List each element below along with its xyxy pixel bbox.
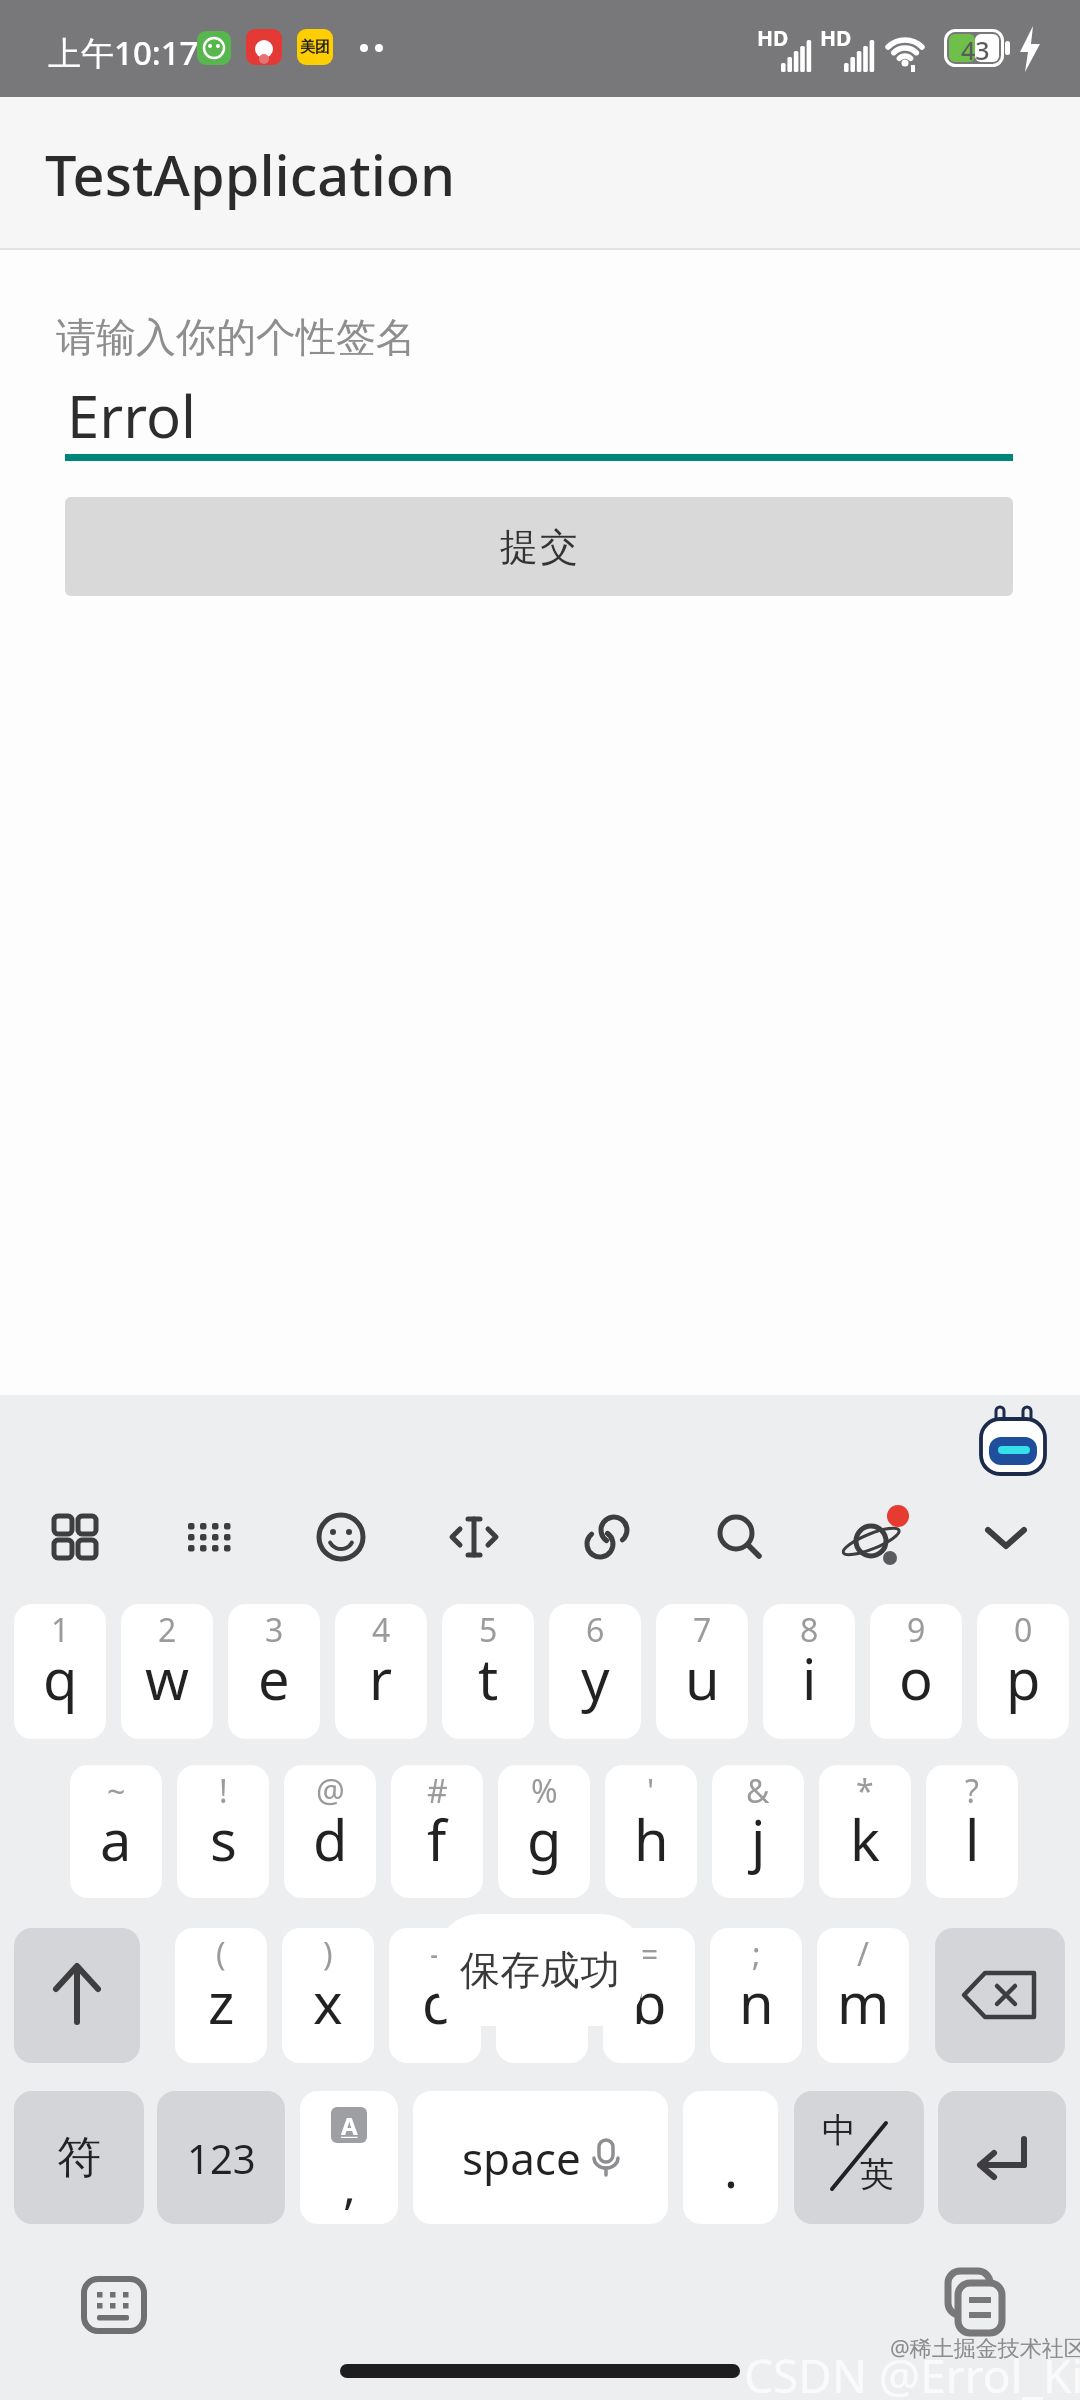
button[interactable]: 5: [442, 1604, 534, 1739]
staticText: 43: [961, 33, 990, 63]
button[interactable]: 3: [228, 1604, 320, 1739]
button[interactable]: (: [175, 1928, 267, 2063]
staticText: -: [430, 1932, 441, 1976]
staticText: .: [724, 2132, 738, 2203]
staticText: _: [535, 1932, 550, 1976]
staticText: @稀土掘金技术社区: [890, 2332, 1080, 2362]
staticText: v: [528, 1964, 557, 2040]
staticText: ): [323, 1932, 333, 1976]
staticText: ': [647, 1769, 655, 1813]
button[interactable]: -: [389, 1928, 481, 2063]
staticText: *: [856, 1769, 874, 1813]
button[interactable]: space: [413, 2091, 668, 2224]
button[interactable]: &: [712, 1765, 804, 1898]
button[interactable]: *: [819, 1765, 911, 1898]
button[interactable]: /: [817, 1928, 909, 2063]
staticText: 上午10:17: [48, 30, 199, 75]
button[interactable]: _: [496, 1928, 588, 2063]
staticText: 美团: [300, 38, 330, 57]
button[interactable]: =: [603, 1928, 695, 2063]
staticText: CSDN @Errol_King: [744, 2344, 1080, 2400]
staticText: k: [850, 1801, 880, 1877]
staticText: %: [531, 1769, 558, 1813]
staticText: &: [746, 1769, 770, 1813]
button[interactable]: 2: [121, 1604, 213, 1739]
staticText: ,: [343, 2153, 356, 2218]
button[interactable]: 中: [794, 2091, 924, 2224]
button[interactable]: 123: [157, 2091, 285, 2224]
staticText: h: [634, 1801, 669, 1877]
staticText: i: [802, 1640, 817, 1716]
staticText: 5: [479, 1608, 498, 1652]
staticText: t: [478, 1640, 499, 1716]
staticText: #: [427, 1769, 448, 1813]
staticText: a: [100, 1801, 132, 1877]
staticText: 英: [860, 2153, 894, 2196]
staticText: z: [208, 1964, 235, 2040]
button[interactable]: @: [284, 1765, 376, 1898]
staticText: j: [751, 1801, 766, 1877]
button[interactable]: 8: [763, 1604, 855, 1739]
staticText: p: [1006, 1640, 1041, 1716]
button[interactable]: A: [300, 2091, 398, 2224]
button[interactable]: %: [498, 1765, 590, 1898]
staticText: x: [313, 1964, 343, 2040]
staticText: e: [258, 1640, 290, 1716]
button[interactable]: ;: [710, 1928, 802, 2063]
button[interactable]: 9: [870, 1604, 962, 1739]
staticText: 0: [1014, 1608, 1033, 1652]
staticText: 2: [158, 1608, 177, 1652]
button[interactable]: [938, 2091, 1066, 2224]
staticText: 请输入你的个性签名: [56, 312, 416, 362]
staticText: @: [316, 1769, 345, 1813]
staticText: c: [422, 1964, 449, 2040]
staticText: n: [739, 1964, 774, 2040]
staticText: 符: [57, 2130, 101, 2185]
button[interactable]: [935, 1928, 1065, 2063]
button[interactable]: 7: [656, 1604, 748, 1739]
staticText: o: [899, 1640, 933, 1716]
staticText: m: [837, 1964, 890, 2040]
staticText: 保存成功: [460, 1945, 620, 1995]
staticText: 提交: [499, 523, 579, 571]
staticText: q: [43, 1640, 78, 1716]
button[interactable]: ': [605, 1765, 697, 1898]
button[interactable]: 符: [14, 2091, 144, 2224]
button[interactable]: ~: [70, 1765, 162, 1898]
button[interactable]: 提交: [65, 497, 1013, 596]
staticText: 中: [822, 2109, 856, 2152]
button[interactable]: 0: [977, 1604, 1069, 1739]
button[interactable]: 4: [335, 1604, 427, 1739]
staticText: 7: [693, 1608, 712, 1652]
button[interactable]: !: [177, 1765, 269, 1898]
button[interactable]: 6: [549, 1604, 641, 1739]
staticText: d: [313, 1801, 348, 1877]
staticText: ~: [107, 1769, 126, 1813]
staticText: =: [640, 1932, 659, 1976]
staticText: 6: [586, 1608, 605, 1652]
staticText: l: [965, 1801, 980, 1877]
staticText: space: [462, 2128, 581, 2188]
staticText: HD: [820, 24, 852, 53]
button[interactable]: .: [683, 2091, 778, 2224]
button[interactable]: ): [282, 1928, 374, 2063]
staticText: /: [857, 1932, 869, 1976]
staticText: 9: [907, 1608, 926, 1652]
button[interactable]: ?: [926, 1765, 1018, 1898]
staticText: ;: [752, 1932, 761, 1976]
staticText: !: [219, 1769, 228, 1813]
staticText: g: [527, 1801, 562, 1877]
staticText: TestApplication: [45, 136, 456, 212]
button[interactable]: #: [391, 1765, 483, 1898]
staticText: HD: [757, 24, 789, 53]
button[interactable]: [14, 1928, 140, 2063]
staticText: 4: [372, 1608, 391, 1652]
button[interactable]: 1: [14, 1604, 106, 1739]
staticText: Errol: [67, 376, 197, 455]
staticText: y: [581, 1640, 610, 1716]
staticText: 3: [265, 1608, 284, 1652]
staticText: 123: [187, 2131, 256, 2185]
staticText: ?: [965, 1769, 979, 1813]
staticText: 8: [800, 1608, 819, 1652]
staticText: f: [427, 1801, 447, 1877]
